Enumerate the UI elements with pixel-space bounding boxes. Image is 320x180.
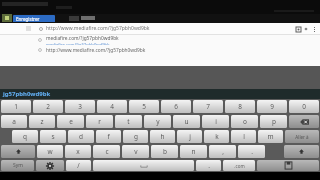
staticText: 3	[78, 102, 82, 111]
staticText: http://www.mediafire.com/?jg57pbh0wd9bk	[46, 47, 146, 54]
staticText: b	[163, 147, 167, 156]
staticText: Sym	[13, 162, 23, 169]
button[interactable]: 4	[97, 100, 127, 113]
button[interactable]: n	[180, 145, 207, 158]
staticText: u	[184, 117, 189, 126]
button[interactable]: f	[96, 130, 121, 143]
staticText: Aller à	[295, 134, 309, 140]
staticText: n	[191, 147, 196, 156]
button[interactable]	[284, 145, 319, 158]
button[interactable]: ,	[209, 145, 236, 158]
button[interactable]: r	[86, 115, 113, 128]
button[interactable]: .	[196, 160, 221, 171]
staticText: http://www.mediafire.com/?jg57pbh0wd9bk	[46, 25, 150, 32]
staticText: a	[12, 117, 16, 126]
button[interactable]: h	[150, 130, 175, 143]
button[interactable]: x	[65, 145, 91, 158]
staticText: i	[215, 117, 217, 126]
button[interactable]	[1, 145, 35, 158]
button[interactable]: g	[123, 130, 148, 143]
button[interactable]: s	[40, 130, 66, 143]
button[interactable]	[93, 160, 194, 171]
button[interactable]: 3	[65, 100, 95, 113]
button[interactable]: m	[258, 130, 283, 143]
button[interactable]: p	[260, 115, 287, 128]
button[interactable]: 9	[257, 100, 287, 113]
button[interactable]: Sym	[1, 160, 34, 171]
button[interactable]: y	[144, 115, 171, 128]
button[interactable]	[36, 160, 64, 171]
button[interactable]: 5	[129, 100, 159, 113]
button[interactable]: http://www.mediafire.com/?jg57pbh0wd9bk	[0, 45, 320, 55]
button[interactable]: .	[238, 145, 265, 158]
staticText: g	[134, 132, 138, 141]
staticText: l	[243, 132, 245, 141]
staticText: 9	[270, 102, 274, 111]
staticText: z	[40, 117, 44, 126]
button[interactable]: /	[66, 160, 91, 171]
staticText: k	[215, 132, 219, 141]
staticText: 7	[206, 102, 210, 111]
staticText: 8	[238, 102, 242, 111]
button[interactable]: k	[204, 130, 229, 143]
button[interactable]: http://www.mediafire.com/?jg57pbh0wd9bk	[0, 23, 320, 34]
button[interactable]: Bookmark	[302, 25, 310, 33]
button[interactable]: 6	[161, 100, 191, 113]
staticText: 0	[302, 102, 306, 111]
button[interactable]: q	[12, 130, 38, 143]
staticText: x	[76, 147, 80, 156]
staticText: w	[47, 147, 53, 156]
staticText: m	[267, 132, 274, 141]
button[interactable]: u	[173, 115, 200, 128]
button[interactable]: t	[115, 115, 142, 128]
button[interactable]: jg57pbh0wd9bk	[3, 90, 51, 98]
button[interactable]: b	[151, 145, 178, 158]
staticText: v	[134, 147, 138, 156]
staticText: Enregistrer	[16, 16, 40, 22]
button[interactable]: mediafire.com/?jg57pbh0wd9bk	[0, 35, 320, 45]
staticText: y	[156, 117, 160, 126]
button[interactable]: z	[29, 115, 55, 128]
staticText: r	[98, 117, 101, 126]
button[interactable]: c	[93, 145, 120, 158]
button[interactable]: 0	[289, 100, 319, 113]
staticText: /	[77, 161, 80, 170]
staticText: h	[160, 132, 165, 141]
staticText: mediafire.com/?jg57pbh0wd9bk	[46, 35, 119, 42]
button[interactable]	[257, 160, 319, 171]
button[interactable]: More options	[310, 25, 318, 33]
button[interactable]: 7	[193, 100, 223, 113]
staticText: p	[272, 117, 276, 126]
button[interactable]: 8	[225, 100, 255, 113]
button[interactable]: 1	[1, 100, 31, 113]
staticText: 1	[14, 102, 18, 111]
button[interactable]: j	[177, 130, 202, 143]
button[interactable]: i	[202, 115, 229, 128]
button[interactable]: v	[122, 145, 149, 158]
button[interactable]: d	[68, 130, 94, 143]
button[interactable]: e	[57, 115, 84, 128]
button[interactable]: l	[231, 130, 256, 143]
button[interactable]: w	[37, 145, 63, 158]
staticText: d	[79, 132, 83, 141]
staticText: q	[23, 132, 27, 141]
button[interactable]: Aller à	[285, 130, 319, 143]
staticText: .	[251, 147, 253, 156]
button[interactable]: 2	[33, 100, 63, 113]
staticText: s	[51, 132, 55, 141]
staticText: c	[105, 147, 109, 156]
button[interactable]: o	[231, 115, 258, 128]
staticText: 6	[174, 102, 178, 111]
staticText: f	[107, 132, 110, 141]
staticText: .	[208, 161, 210, 170]
staticText: 4	[110, 102, 114, 111]
button[interactable]: Profile	[2, 14, 12, 22]
button[interactable]: .com	[223, 160, 255, 171]
button[interactable]	[289, 115, 319, 128]
staticText: ,	[222, 147, 224, 156]
button[interactable]: Screenshot	[294, 25, 302, 33]
button[interactable]: a	[1, 115, 27, 128]
staticText: 5	[142, 102, 146, 111]
button[interactable]: Enregistrer	[13, 15, 55, 22]
staticText: .com	[234, 163, 245, 169]
